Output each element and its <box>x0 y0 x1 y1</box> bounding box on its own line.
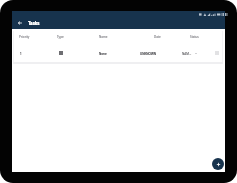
staticText: Tasks <box>28 20 40 26</box>
staticText: Status <box>190 35 199 39</box>
staticText: None <box>99 52 107 56</box>
staticText: Priority <box>19 35 30 39</box>
button[interactable]: Date <box>154 35 161 39</box>
button[interactable]: Name <box>99 35 108 39</box>
staticText: 1 <box>20 52 22 56</box>
staticText: Tasks <box>28 20 40 26</box>
button[interactable]: Priority <box>19 35 30 39</box>
staticText: Date <box>154 35 161 39</box>
button[interactable]: Add <box>212 158 224 170</box>
button[interactable]: NAM... <box>182 52 192 56</box>
staticText: NAM... <box>182 52 192 56</box>
staticText: Type <box>57 35 64 39</box>
staticText: Type <box>57 35 64 39</box>
staticText: 1 <box>20 52 22 56</box>
staticText: Name <box>99 35 108 39</box>
staticText: Status <box>190 35 199 39</box>
staticText: Priority <box>19 35 30 39</box>
staticText: UNKNOWN <box>140 52 156 56</box>
button[interactable]: Back <box>14 17 25 28</box>
staticText: UNKNOWN <box>140 52 156 56</box>
staticText: Name <box>99 35 108 39</box>
staticText: None <box>99 52 107 56</box>
button[interactable]: Type <box>57 35 64 39</box>
staticText: NAM... <box>182 52 192 56</box>
staticText: None <box>99 52 107 56</box>
staticText: 1 <box>20 52 22 56</box>
staticText: UNKNOWN <box>140 52 156 56</box>
staticText: Date <box>154 35 161 39</box>
button[interactable]: Status <box>190 35 199 39</box>
